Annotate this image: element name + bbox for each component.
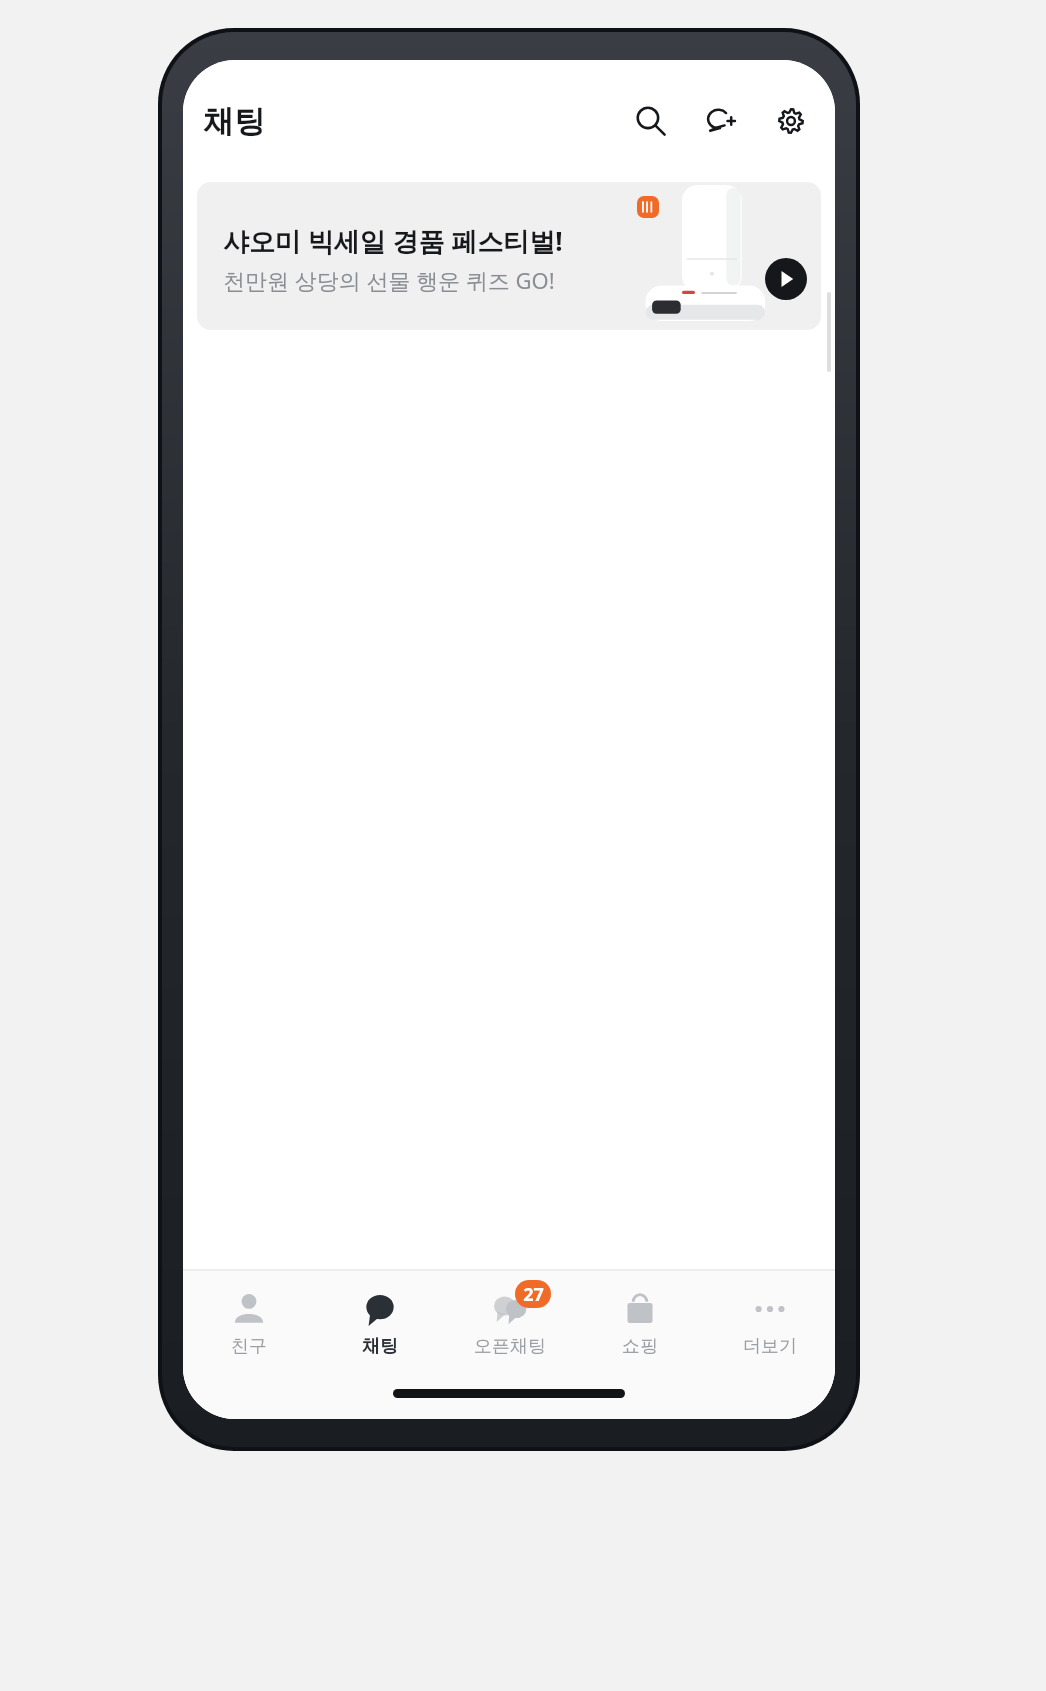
- staticText: 천만원 상당의 선물 행운 퀴즈 GO!: [223, 265, 555, 295]
- staticText: 샤오미 빅세일 경품 페스티벌!: [223, 223, 563, 259]
- button[interactable]: Play: [765, 258, 807, 300]
- button[interactable]: Settings: [765, 95, 817, 147]
- staticText: 쇼핑: [622, 1335, 658, 1358]
- button[interactable]: Search: [625, 95, 677, 147]
- button[interactable]: 27: [445, 1271, 575, 1377]
- staticText: 더보기: [743, 1335, 797, 1358]
- button[interactable]: 채팅: [314, 1271, 445, 1377]
- button[interactable]: 친구: [183, 1271, 314, 1377]
- button[interactable]: 더보기: [705, 1271, 835, 1377]
- staticText: 27: [523, 1282, 544, 1307]
- button[interactable]: 샤오미 빅세일 경품 페스티벌!: [197, 182, 821, 330]
- button[interactable]: New chat: [695, 95, 747, 147]
- staticText: 채팅: [203, 102, 265, 141]
- staticText: 채팅: [362, 1335, 398, 1358]
- staticText: 오픈채팅: [474, 1335, 546, 1358]
- staticText: 친구: [231, 1335, 267, 1358]
- button[interactable]: 쇼핑: [575, 1271, 705, 1377]
